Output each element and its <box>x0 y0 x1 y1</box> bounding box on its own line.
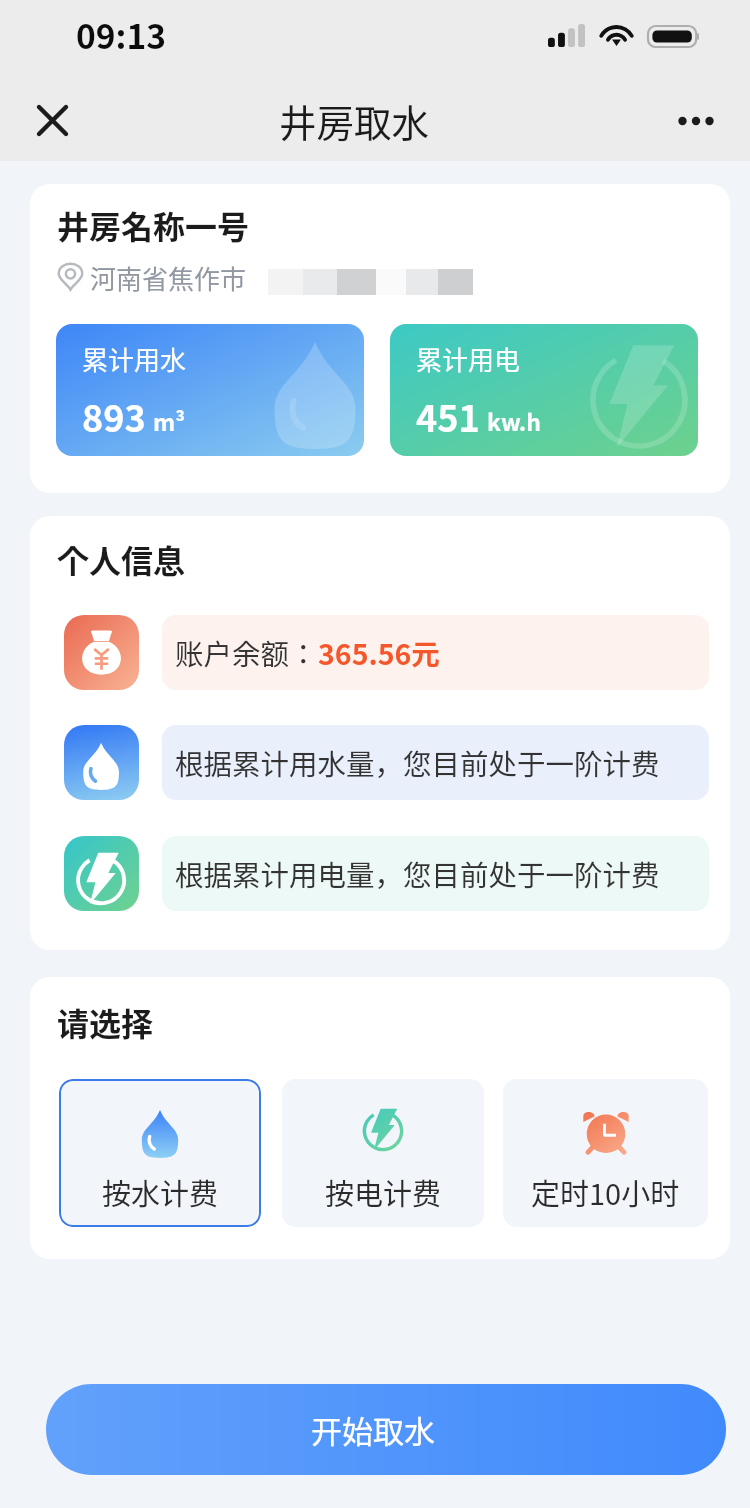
button[interactable]: 按水计费 <box>59 1079 261 1227</box>
staticText: 451 <box>416 390 480 442</box>
staticText: 请选择 <box>57 999 154 1045</box>
button[interactable]: 累计用电 <box>390 324 698 456</box>
staticText: 定时10小时 <box>531 1171 680 1213</box>
staticText: 09:13 <box>76 10 166 59</box>
button[interactable]: 开始取水 <box>46 1384 726 1475</box>
staticText: 开始取水 <box>311 1407 435 1452</box>
staticText: kw.h <box>487 404 542 437</box>
staticText: 893 <box>82 390 146 442</box>
staticText: 井房名称一号 <box>57 202 250 248</box>
staticText: m³ <box>153 404 185 437</box>
button[interactable]: 根据累计用电量，您目前处于一阶计费 <box>64 836 709 911</box>
staticText: 根据累计用水量，您目前处于一阶计费 <box>175 742 660 783</box>
button[interactable]: 累计用水 <box>56 324 364 456</box>
button[interactable]: More options <box>669 94 723 148</box>
staticText: 按电计费 <box>325 1171 442 1213</box>
staticText: 根据累计用电量，您目前处于一阶计费 <box>175 853 660 894</box>
staticText: 累计用电 <box>416 340 521 378</box>
staticText: 365.56元 <box>318 632 440 673</box>
button[interactable]: 按电计费 <box>282 1079 484 1227</box>
staticText: 按水计费 <box>102 1171 219 1213</box>
staticText: 累计用水 <box>82 340 187 378</box>
staticText: 井房取水 <box>279 93 429 147</box>
staticText: 河南省焦作市 <box>90 259 247 297</box>
button[interactable]: 账户余额： <box>64 615 709 690</box>
button[interactable]: 定时10小时 <box>503 1079 708 1227</box>
staticText: 账户余额： <box>175 632 318 673</box>
button[interactable]: Close <box>25 93 80 148</box>
staticText: 个人信息 <box>57 536 186 582</box>
button[interactable]: 根据累计用水量，您目前处于一阶计费 <box>64 725 709 800</box>
